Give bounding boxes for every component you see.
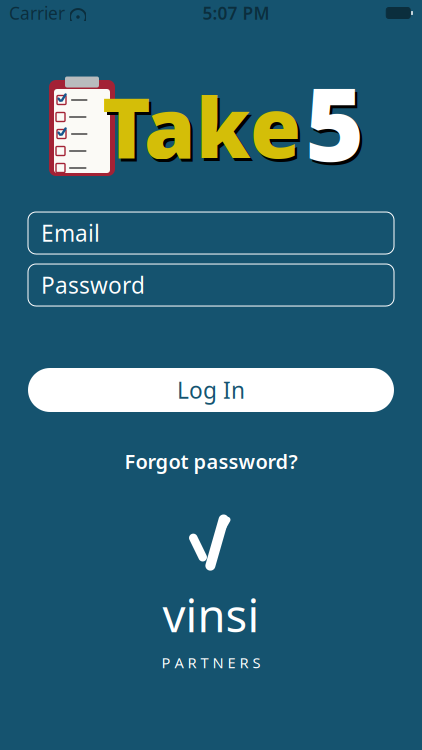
staticText: 5 xyxy=(305,55,364,189)
button[interactable]: Log In xyxy=(28,368,394,412)
staticText: Password xyxy=(41,270,145,300)
staticText: Take xyxy=(104,74,303,184)
button[interactable]: Password xyxy=(28,264,394,306)
staticText: vinsi xyxy=(162,585,259,645)
button[interactable]: Email xyxy=(28,212,394,254)
staticText: P A R T N E R S xyxy=(161,653,260,672)
staticText: Log In xyxy=(177,375,245,405)
staticText: Email xyxy=(41,218,100,248)
staticText: Forgot password? xyxy=(124,448,297,475)
staticText: Take xyxy=(102,71,301,181)
staticText: 5:07 PM xyxy=(202,1,269,24)
button[interactable]: Forgot password? xyxy=(110,442,311,481)
staticText: 5 xyxy=(307,58,366,192)
staticText: Carrier xyxy=(9,1,65,24)
